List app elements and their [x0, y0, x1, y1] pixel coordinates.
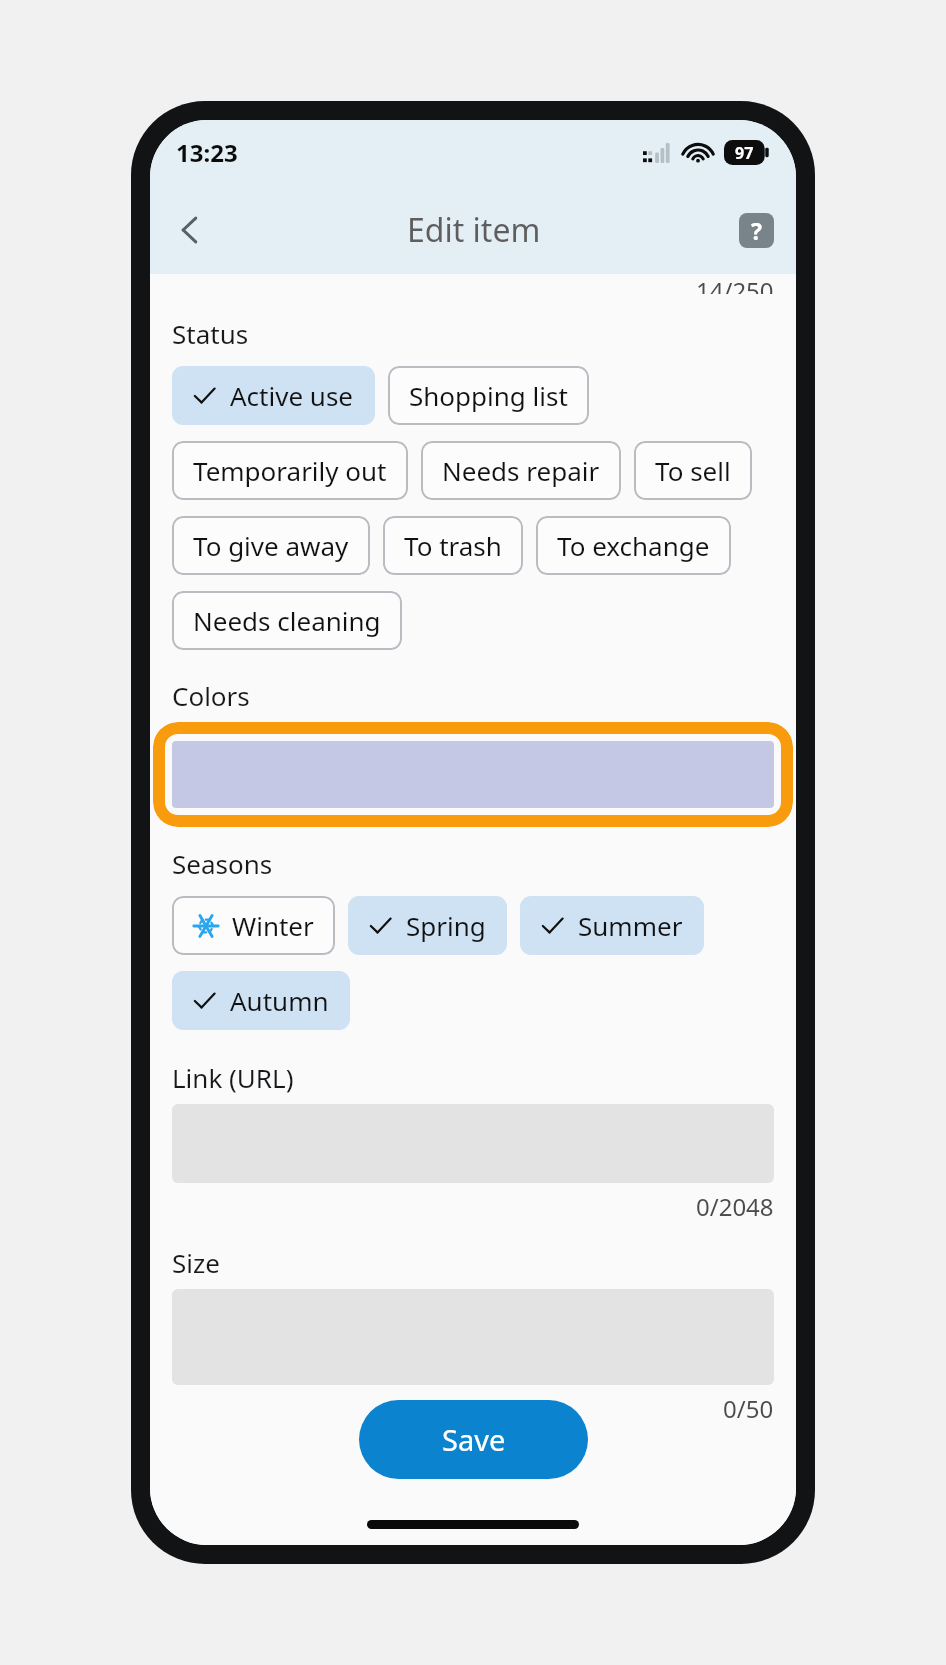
button[interactable]: Save — [359, 1400, 588, 1479]
staticText: Status — [172, 316, 249, 351]
button[interactable]: Temporarily out — [172, 441, 408, 500]
staticText: 13:23 — [176, 136, 238, 169]
staticText: Spring — [406, 908, 486, 943]
button[interactable]: To trash — [383, 516, 523, 575]
button[interactable]: Spring — [348, 896, 507, 955]
button[interactable]: Summer — [520, 896, 704, 955]
staticText: Active use — [230, 378, 354, 413]
staticText: Colors — [172, 678, 250, 713]
staticText: Winter — [232, 908, 314, 943]
button[interactable]: Needs cleaning — [172, 591, 402, 650]
staticText: To trash — [404, 528, 502, 563]
staticText: To give away — [193, 528, 349, 563]
staticText: Seasons — [172, 846, 273, 881]
button[interactable]: Shopping list — [388, 366, 589, 425]
staticText: Link (URL) — [172, 1060, 294, 1095]
button[interactable]: Back — [164, 204, 216, 256]
staticText: Shopping list — [409, 378, 568, 413]
button[interactable]: To give away — [172, 516, 370, 575]
staticText: ? — [751, 215, 762, 246]
staticText: Summer — [578, 908, 683, 943]
staticText: To sell — [655, 453, 731, 488]
staticText: 0/2048 — [696, 1190, 774, 1223]
staticText: Edit item — [407, 208, 541, 252]
button[interactable]: Needs repair — [421, 441, 621, 500]
button[interactable]: Autumn — [172, 971, 350, 1030]
staticText: To exchange — [557, 528, 710, 563]
staticText: 97 — [735, 142, 754, 164]
staticText: 0/50 — [723, 1392, 774, 1425]
staticText: Temporarily out — [193, 453, 387, 488]
staticText: Size — [172, 1245, 220, 1280]
button[interactable]: To exchange — [536, 516, 731, 575]
button[interactable]: Help — [732, 206, 780, 254]
staticText: Save — [442, 1420, 506, 1459]
button[interactable]: Active use — [172, 366, 375, 425]
staticText: Autumn — [230, 983, 329, 1018]
button[interactable]: To sell — [634, 441, 752, 500]
staticText: Needs repair — [442, 453, 600, 488]
staticText: Needs cleaning — [193, 603, 381, 638]
staticText: 14/250 — [696, 274, 774, 294]
button[interactable]: Winter — [172, 896, 335, 955]
